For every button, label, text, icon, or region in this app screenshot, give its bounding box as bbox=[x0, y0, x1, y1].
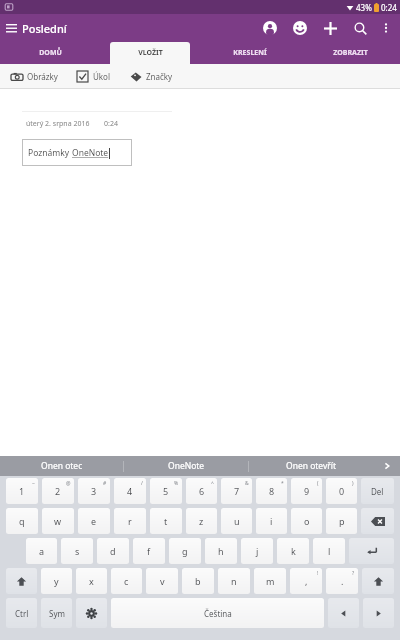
button[interactable]: a bbox=[26, 538, 57, 564]
button[interactable]: Move right bbox=[363, 598, 394, 628]
button[interactable]: VLOŽIT bbox=[110, 42, 190, 64]
staticText: r bbox=[128, 515, 132, 527]
button[interactable]: c bbox=[111, 568, 142, 594]
button[interactable]: r bbox=[114, 508, 146, 534]
button[interactable]: Feedback bbox=[288, 16, 312, 40]
button[interactable]: Poznámky bbox=[22, 139, 132, 166]
staticText: # bbox=[103, 480, 107, 487]
button[interactable]: 2 bbox=[42, 478, 74, 504]
button[interactable]: New note bbox=[318, 16, 342, 40]
staticText: 0:24 bbox=[381, 2, 397, 13]
button[interactable]: DOMŮ bbox=[10, 42, 90, 64]
button[interactable]: Onen otec bbox=[0, 456, 124, 476]
button[interactable]: Search bbox=[348, 16, 372, 40]
button[interactable]: x bbox=[76, 568, 107, 594]
button[interactable]: p bbox=[326, 508, 357, 534]
staticText: t bbox=[164, 515, 168, 527]
staticText: z bbox=[199, 515, 204, 527]
button[interactable]: Značky bbox=[127, 68, 175, 85]
button[interactable]: ZOBRAZIT bbox=[310, 42, 390, 64]
staticText: c bbox=[124, 575, 129, 587]
staticText: % bbox=[174, 480, 179, 487]
button[interactable]: w bbox=[42, 508, 74, 534]
staticText: l bbox=[328, 545, 331, 557]
button[interactable]: u bbox=[221, 508, 252, 534]
button[interactable]: m bbox=[254, 568, 286, 594]
staticText: u bbox=[234, 515, 240, 527]
button[interactable]: 5 bbox=[150, 478, 182, 504]
button[interactable]: Move left bbox=[328, 598, 359, 628]
button[interactable]: o bbox=[291, 508, 322, 534]
staticText: 2 bbox=[55, 485, 61, 497]
staticText: 1 bbox=[19, 485, 25, 497]
button[interactable]: t bbox=[150, 508, 182, 534]
button[interactable]: 7 bbox=[221, 478, 252, 504]
button[interactable]: Obrázky bbox=[8, 68, 60, 85]
staticText: Ctrl bbox=[15, 608, 29, 619]
button[interactable]: n bbox=[218, 568, 250, 594]
button[interactable]: KRESLENÍ bbox=[210, 42, 290, 64]
staticText: OneNote bbox=[168, 460, 205, 472]
button[interactable]: 8 bbox=[256, 478, 287, 504]
staticText: @ bbox=[66, 480, 71, 487]
button[interactable]: Navigation drawer bbox=[0, 17, 22, 39]
button[interactable]: y bbox=[41, 568, 72, 594]
button[interactable]: k bbox=[277, 538, 309, 564]
button[interactable]: Čeština bbox=[111, 598, 324, 628]
staticText: ! bbox=[317, 570, 319, 577]
staticText: . bbox=[341, 575, 344, 587]
button[interactable]: s bbox=[61, 538, 93, 564]
button[interactable]: 4 bbox=[114, 478, 146, 504]
button[interactable]: Shift bbox=[362, 568, 394, 594]
button[interactable]: . bbox=[326, 568, 358, 594]
button[interactable]: Account bbox=[258, 16, 282, 40]
button[interactable]: e bbox=[78, 508, 110, 534]
staticText: 9 bbox=[304, 485, 310, 497]
button[interactable]: 6 bbox=[186, 478, 217, 504]
staticText: , bbox=[305, 575, 308, 587]
staticText: m bbox=[266, 575, 275, 587]
button[interactable]: d bbox=[97, 538, 129, 564]
button[interactable]: Keyboard settings bbox=[76, 598, 107, 628]
staticText: Obrázky bbox=[27, 71, 58, 82]
staticText: s bbox=[75, 545, 80, 557]
staticText: ? bbox=[352, 570, 355, 577]
button[interactable]: Del bbox=[361, 478, 394, 504]
button[interactable]: z bbox=[186, 508, 217, 534]
button[interactable]: , bbox=[290, 568, 322, 594]
button[interactable]: f bbox=[133, 538, 165, 564]
button[interactable]: More options bbox=[374, 16, 398, 40]
button[interactable]: Úkol bbox=[74, 68, 113, 85]
button[interactable]: 0 bbox=[326, 478, 357, 504]
button[interactable]: More suggestions bbox=[374, 456, 400, 476]
button[interactable]: Enter bbox=[349, 538, 394, 564]
button[interactable]: j bbox=[241, 538, 273, 564]
button[interactable]: q bbox=[6, 508, 38, 534]
staticText: Onen otevřít bbox=[286, 460, 337, 472]
button[interactable]: Backspace bbox=[361, 508, 394, 534]
staticText: ^ bbox=[211, 480, 214, 487]
button[interactable]: Onen otevřít bbox=[249, 456, 374, 476]
staticText: 5 bbox=[163, 485, 169, 497]
button[interactable]: 9 bbox=[291, 478, 322, 504]
button[interactable]: g bbox=[169, 538, 201, 564]
button[interactable]: h bbox=[205, 538, 237, 564]
staticText: g bbox=[182, 545, 188, 557]
staticText: 0:24 bbox=[104, 119, 118, 129]
staticText: w bbox=[54, 515, 62, 527]
staticText: & bbox=[245, 480, 249, 487]
staticText: q bbox=[19, 515, 25, 527]
button[interactable]: v bbox=[146, 568, 178, 594]
button[interactable]: b bbox=[182, 568, 214, 594]
staticText: j bbox=[256, 545, 259, 557]
button[interactable]: i bbox=[256, 508, 287, 534]
button[interactable]: Sym bbox=[41, 598, 72, 628]
button[interactable]: Shift bbox=[6, 568, 37, 594]
button[interactable]: 3 bbox=[78, 478, 110, 504]
button[interactable]: 1 bbox=[6, 478, 38, 504]
staticText: 4 bbox=[127, 485, 133, 497]
button[interactable]: OneNote bbox=[124, 456, 249, 476]
button[interactable]: l bbox=[313, 538, 345, 564]
button[interactable]: Ctrl bbox=[6, 598, 37, 628]
staticText: úterý 2. srpna 2016 bbox=[26, 119, 90, 129]
